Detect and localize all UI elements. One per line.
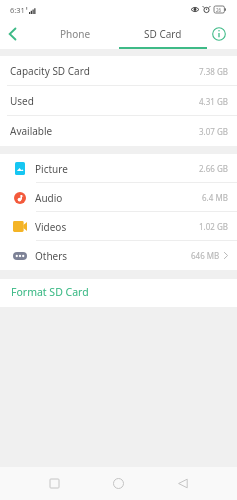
button[interactable]: Videos [0,212,237,241]
staticText: Picture [35,162,68,176]
staticText: 3.07 GB [199,126,228,137]
staticText: 4.31 GB [199,96,228,107]
staticText: Available [10,124,53,138]
button[interactable]: Phone [46,18,104,49]
staticText: Used [10,94,34,108]
button[interactable]: SD Card [119,18,207,49]
button[interactable]: Available [0,116,237,146]
button[interactable]: Audio [0,183,237,212]
staticText: 6:31 [10,5,25,15]
staticText: Videos [35,220,67,234]
staticText: 1.02 GB [199,221,228,232]
button[interactable]: Format SD Card [0,279,237,307]
button[interactable]: Recents [36,467,73,500]
button[interactable]: Back [164,467,201,500]
staticText: Format SD Card [11,285,89,299]
staticText: Capacity SD Card [10,64,90,78]
button[interactable]: Used [0,86,237,116]
button[interactable]: Capacity SD Card [0,56,237,86]
button[interactable]: Others [0,241,237,270]
button[interactable]: Picture [0,154,237,183]
button[interactable]: Info [205,18,233,49]
staticText: 6.4 MB [202,192,228,203]
button[interactable]: Home [100,467,137,500]
staticText: Phone [60,27,91,41]
staticText: 2.66 GB [199,163,228,174]
button[interactable]: Back [0,18,24,49]
staticText: 646 MB [191,250,220,261]
staticText: SD Card [144,27,182,41]
staticText: Audio [35,191,63,205]
staticText: 26 [216,7,222,13]
staticText: Others [35,249,68,263]
staticText: 7.38 GB [199,66,228,77]
